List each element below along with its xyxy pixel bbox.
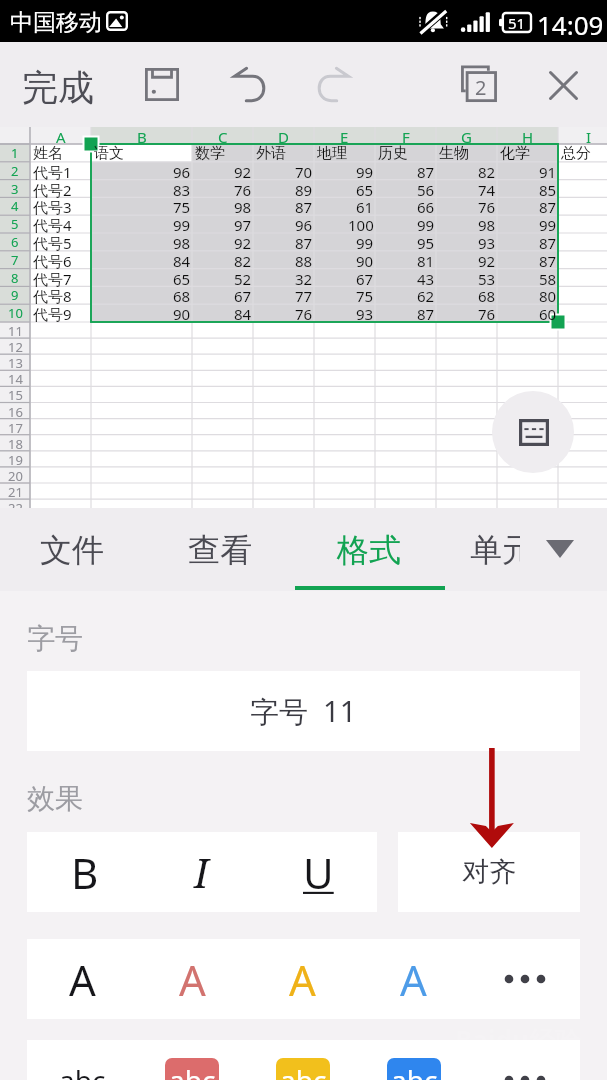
staticText: 90 <box>356 251 374 269</box>
staticText: 82 <box>234 251 252 269</box>
staticText: C <box>218 127 228 144</box>
staticText: 90 <box>173 304 191 322</box>
button[interactable]: I <box>143 832 260 912</box>
staticText: 92 <box>234 233 252 251</box>
staticText: 姓名 <box>33 144 63 162</box>
button[interactable]: Redo <box>307 58 359 110</box>
button[interactable]: More highlights <box>469 1040 580 1080</box>
staticText: 65 <box>356 180 374 198</box>
staticText: 70 <box>295 162 313 180</box>
staticText: 96 <box>295 215 313 233</box>
staticText: 97 <box>234 215 252 233</box>
button[interactable]: 单元格 <box>450 508 520 591</box>
staticText: 13 <box>8 354 23 370</box>
staticText: 76 <box>234 180 252 198</box>
staticText: 88 <box>295 251 313 269</box>
button[interactable]: 查看 <box>146 508 294 591</box>
button[interactable]: B <box>27 832 143 912</box>
staticText: 87 <box>539 197 557 215</box>
staticText: 76 <box>295 304 313 322</box>
button[interactable]: A <box>358 939 469 1019</box>
staticText: 83 <box>173 180 191 198</box>
button[interactable]: More tabs <box>538 531 582 567</box>
button[interactable]: 文件 <box>0 508 146 591</box>
staticText: A <box>69 951 96 1008</box>
staticText: 11 <box>8 322 23 338</box>
staticText: I <box>586 127 592 144</box>
staticText: 21 <box>8 483 23 499</box>
staticText: 98 <box>173 233 191 251</box>
button[interactable]: Save <box>136 58 188 110</box>
button[interactable]: Undo <box>224 58 276 110</box>
staticText: 91 <box>539 162 557 180</box>
staticText: H <box>522 127 534 144</box>
staticText: 76 <box>478 197 496 215</box>
staticText: 5 <box>11 215 19 233</box>
staticText: 字号 <box>27 621 83 656</box>
button[interactable]: 格式 <box>295 508 443 591</box>
staticText: A <box>179 951 206 1008</box>
staticText: 87 <box>417 162 435 180</box>
staticText: 52 <box>234 269 252 287</box>
button[interactable]: Keyboard <box>492 391 574 473</box>
button[interactable]: Sheets <box>453 57 505 109</box>
staticText: 75 <box>173 197 191 215</box>
staticText: 代号3 <box>33 197 72 215</box>
button[interactable]: A <box>27 939 137 1019</box>
staticText: 67 <box>234 286 252 304</box>
staticText: 93 <box>356 304 374 322</box>
staticText: 87 <box>295 197 313 215</box>
staticText: 68 <box>478 286 496 304</box>
staticText: 87 <box>539 233 557 251</box>
staticText: abc <box>59 1061 106 1080</box>
button[interactable]: Close <box>537 59 589 111</box>
button[interactable]: abc <box>137 1040 247 1080</box>
staticText: 查看 <box>188 530 252 570</box>
staticText: A <box>56 127 66 144</box>
staticText: 代号9 <box>33 304 72 322</box>
staticText: 85 <box>539 180 557 198</box>
staticText: 字号 11 <box>250 691 357 731</box>
button[interactable]: A <box>247 939 358 1019</box>
staticText: abc <box>169 1061 216 1080</box>
button[interactable]: 完成 <box>22 65 94 110</box>
staticText: 87 <box>417 304 435 322</box>
staticText: 代号7 <box>33 269 72 287</box>
staticText: abc <box>391 1061 438 1080</box>
button[interactable]: U <box>260 832 377 912</box>
staticText: F <box>402 127 410 144</box>
staticText: 1 <box>11 144 19 162</box>
staticText: 文件 <box>40 530 104 570</box>
staticText: 92 <box>234 162 252 180</box>
button[interactable]: A <box>137 939 247 1019</box>
staticText: 中国移动 <box>10 8 102 37</box>
button[interactable]: More colors <box>469 939 580 1019</box>
staticText: 51 <box>508 13 526 32</box>
staticText: 化学 <box>500 144 530 162</box>
staticText: G <box>461 127 472 144</box>
staticText: A <box>400 951 427 1008</box>
staticText: 65 <box>173 269 191 287</box>
button[interactable]: 对齐 <box>398 832 580 912</box>
staticText: 总分 <box>561 144 591 162</box>
button[interactable]: abc <box>27 1040 137 1080</box>
staticText: 58 <box>539 269 557 287</box>
staticText: 87 <box>295 233 313 251</box>
staticText: 代号1 <box>33 162 72 180</box>
staticText: 68 <box>173 286 191 304</box>
staticText: 数学 <box>195 144 225 162</box>
staticText: 77 <box>295 286 313 304</box>
button[interactable]: abc <box>358 1040 469 1080</box>
staticText: 75 <box>356 286 374 304</box>
staticText: 地理 <box>317 144 347 162</box>
staticText: 10 <box>8 304 23 322</box>
button[interactable]: 字号 11 <box>27 671 580 751</box>
staticText: 20 <box>8 467 23 483</box>
staticText: 96 <box>173 162 191 180</box>
staticText: 对齐 <box>462 855 516 889</box>
button[interactable]: abc <box>247 1040 358 1080</box>
staticText: 80 <box>539 286 557 304</box>
staticText: 语文 <box>94 144 124 162</box>
staticText: 7 <box>11 251 19 269</box>
staticText: 43 <box>417 269 435 287</box>
